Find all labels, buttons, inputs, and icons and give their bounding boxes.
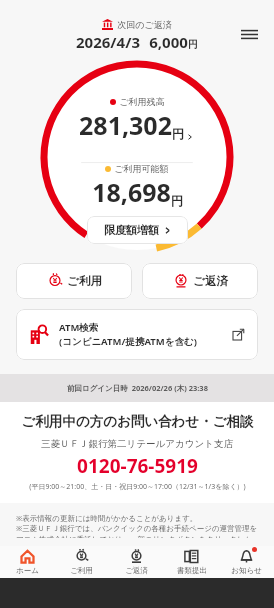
staticText: ご返済 (193, 274, 228, 288)
staticText: ※三菱ＵＦＪ銀行では、バンクイックの各種お手続ページの運営管理をアコム株式会社に… (16, 523, 258, 538)
staticText: (平日9:00～21:00、土・日・祝日9:00～17:00（12/31～1/3… (29, 482, 246, 492)
staticText: 円 (172, 126, 184, 141)
button[interactable]: メニュー (232, 17, 266, 51)
staticText: ご返済 (125, 566, 148, 575)
button[interactable]: 0120-76-5919 (77, 453, 198, 479)
staticText: ご利用残高 (119, 96, 165, 107)
staticText: 前回ログイン日時 2026/02/26 (木) 23:38 (67, 383, 208, 393)
button[interactable]: ATM検索 (16, 309, 258, 360)
staticText: お知らせ (231, 566, 262, 575)
staticText: 限度額増額 (104, 223, 159, 237)
button[interactable]: 281,302 (79, 108, 195, 142)
staticText: 6,000 (149, 32, 188, 52)
staticText: ご利用中の方のお問い合わせ・ご相談 (21, 413, 254, 430)
button[interactable]: 限度額増額 (87, 216, 188, 244)
button[interactable]: 書類提出 (164, 546, 219, 578)
staticText: 281,302 (79, 108, 172, 142)
staticText: ご利用 (67, 274, 102, 288)
button[interactable]: ご返済 (142, 263, 258, 299)
staticText: 円 (188, 38, 198, 51)
button[interactable]: お知らせ (219, 546, 274, 578)
staticText: ホーム (16, 566, 39, 575)
staticText: 次回のご返済 (117, 19, 172, 30)
staticText: 三菱ＵＦＪ銀行第二リテールアカウント支店 (41, 438, 233, 450)
staticText: 書類提出 (177, 566, 207, 575)
staticText: 円 (171, 193, 183, 208)
staticText: 18,698 (92, 175, 171, 209)
button[interactable]: ご返済 (109, 546, 164, 578)
button[interactable]: ご利用 (54, 546, 109, 578)
staticText: 2026/4/3 (76, 32, 140, 52)
staticText: (コンビニATM/提携ATMを含む) (59, 335, 197, 348)
other: 外部リンク (233, 329, 244, 340)
staticText: ATM検索 (59, 321, 99, 334)
staticText: ご利用 (70, 566, 93, 575)
button[interactable]: ホーム (0, 546, 54, 578)
staticText: ※表示情報の更新には時間がかかることがあります。 (16, 513, 198, 523)
staticText: ご利用可能額 (114, 163, 169, 174)
button[interactable]: ご利用 (16, 263, 132, 299)
